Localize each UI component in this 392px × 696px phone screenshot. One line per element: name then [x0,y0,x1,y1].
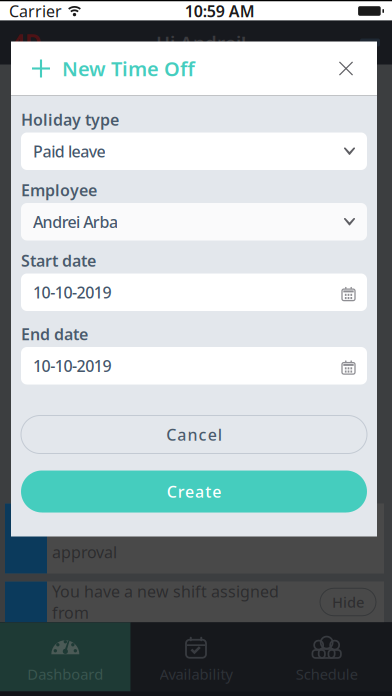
staticText: Dashboard [27,664,103,684]
staticText: Paid leave [33,141,105,162]
staticText: Start date [21,250,96,271]
button[interactable]: 10-10-2019 [21,273,367,311]
button[interactable]: Availability [131,622,261,691]
staticText: Andrei Arba [33,211,118,232]
button[interactable]: Close [332,54,360,82]
staticText: Employee [21,179,97,201]
staticText: approval [52,541,117,563]
staticText: 10-10-2019 [33,282,111,303]
staticText: 10:59 AM [185,0,255,22]
staticText: End date [21,323,88,345]
staticText: New Time Off [62,55,195,82]
staticText: Create [167,481,221,502]
staticText: Hide [332,592,364,612]
staticText: Schedule [296,664,358,684]
staticText: Cancel [166,424,222,445]
staticText: 4D [12,27,42,57]
button[interactable]: Cancel [21,415,367,453]
staticText: Hi Andrei! [156,30,246,55]
button[interactable]: Paid leave [21,132,367,170]
staticText: Carrier [9,0,62,22]
staticText: Holiday type [21,109,119,130]
button[interactable]: 10-10-2019 [21,347,367,384]
button[interactable]: Andrei Arba [21,203,367,240]
staticText: You have a new shift assigned from [52,581,279,623]
staticText: Availability [159,664,232,684]
button[interactable]: Schedule [261,622,392,691]
button[interactable]: Create [21,470,367,512]
staticText: 10-10-2019 [33,355,111,376]
button[interactable]: Dashboard [0,622,131,691]
